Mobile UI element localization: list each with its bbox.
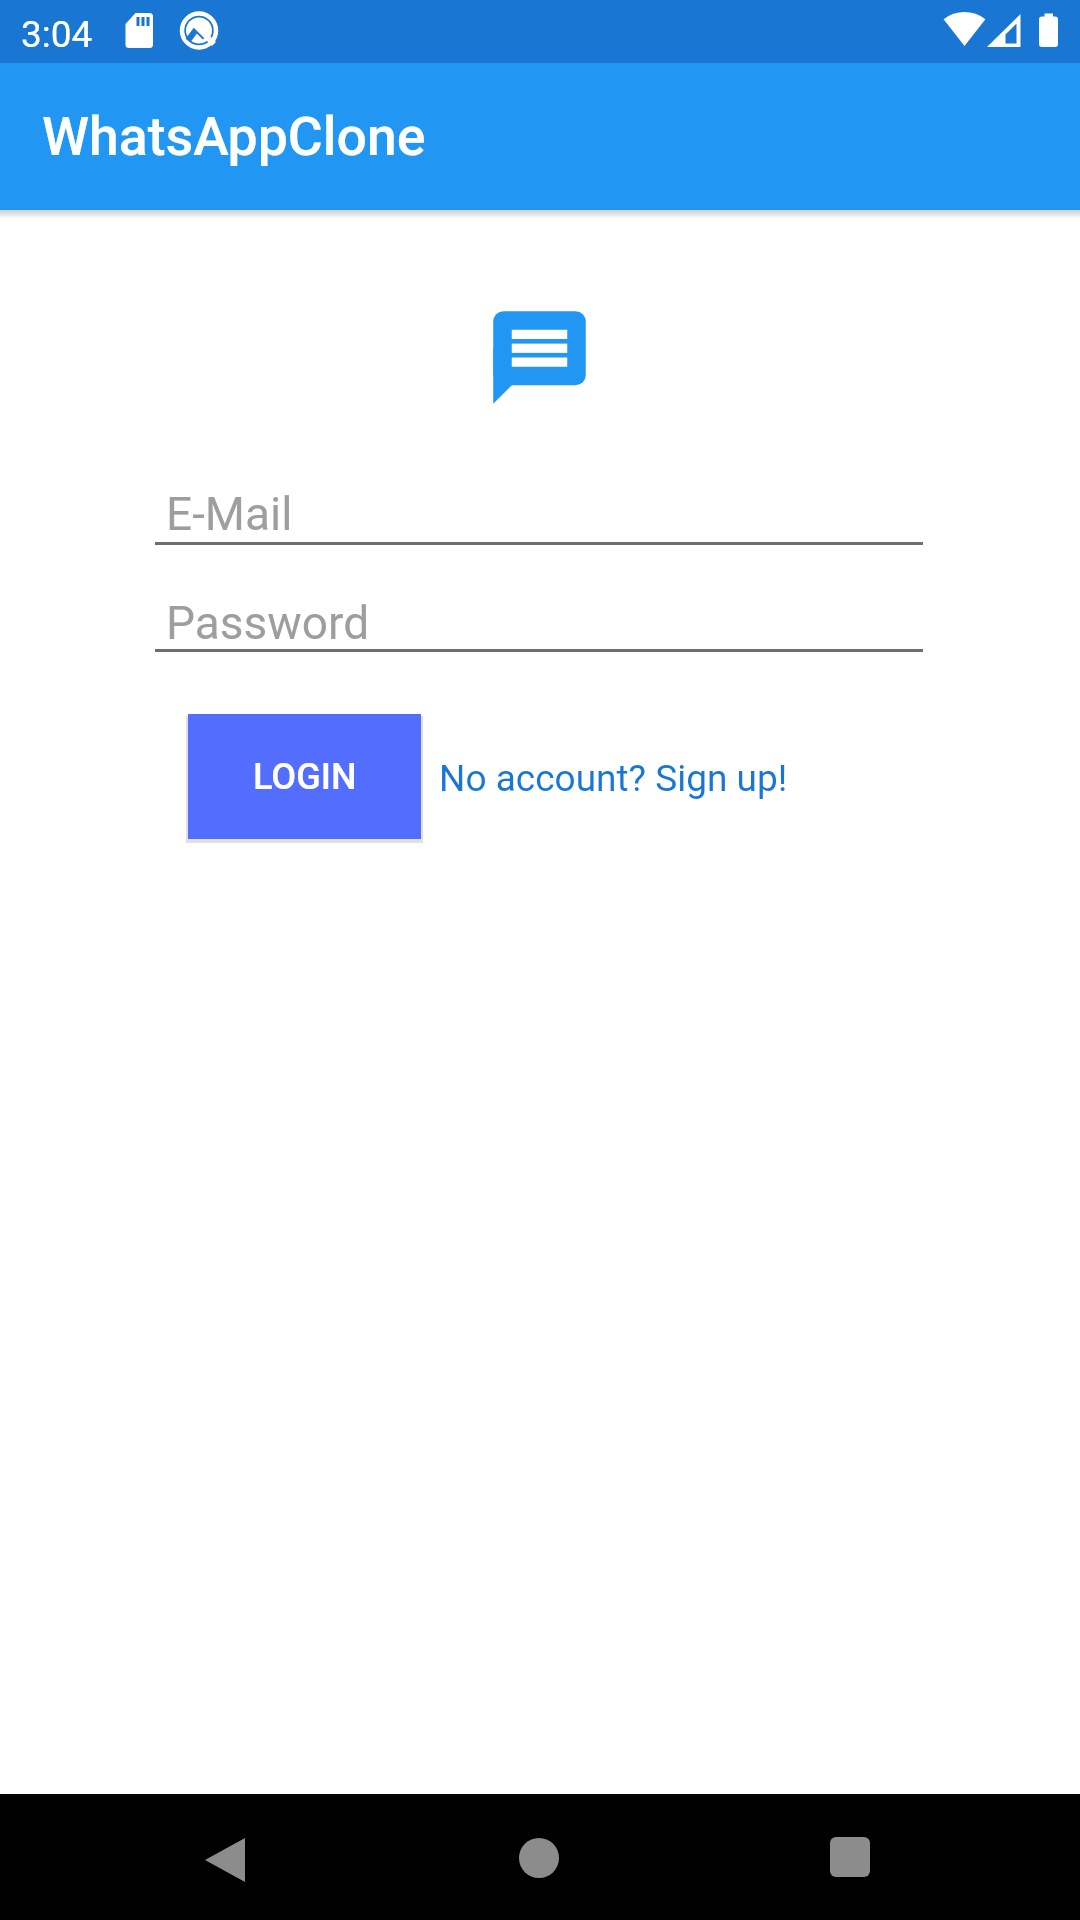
staticText: LOGIN: [253, 756, 357, 798]
staticText: E-Mail: [166, 487, 293, 541]
button[interactable]: No account? Sign up!: [439, 757, 788, 800]
staticText: WhatsAppClone: [42, 105, 426, 168]
staticText: Password: [166, 596, 370, 650]
staticText: No account? Sign up!: [439, 757, 788, 800]
button[interactable]: LOGIN: [188, 714, 421, 839]
staticText: 3:04: [21, 13, 93, 56]
